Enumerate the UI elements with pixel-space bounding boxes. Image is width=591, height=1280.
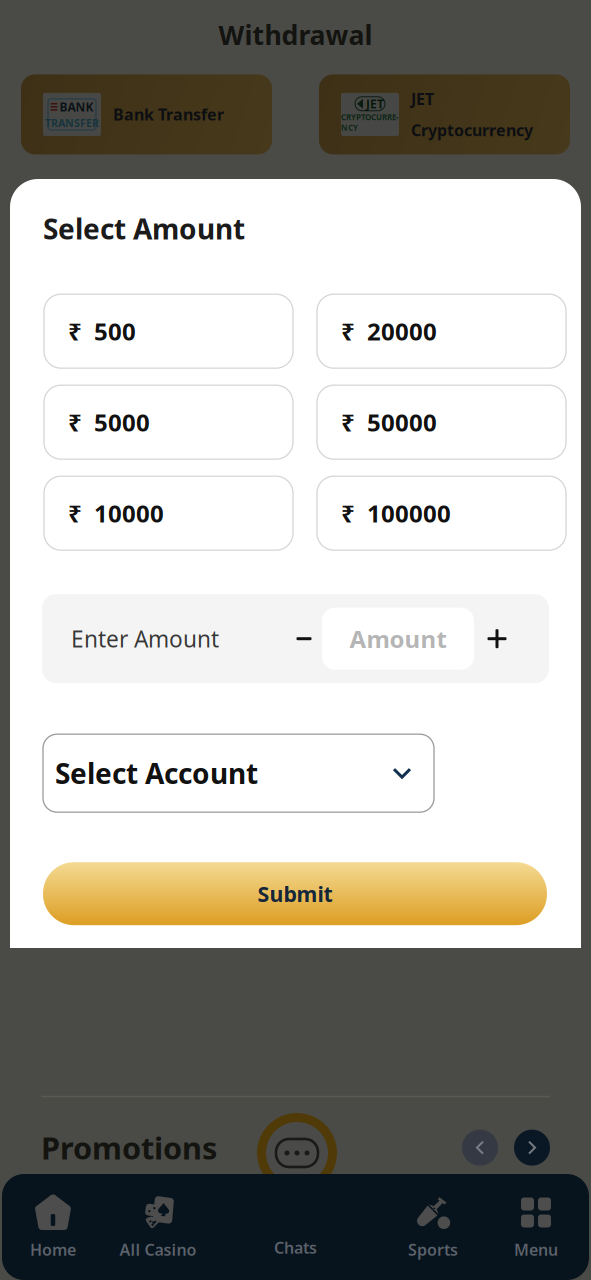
button[interactable]: ₹ 10000 [44, 476, 293, 550]
button[interactable]: Home [2, 1174, 104, 1280]
button[interactable]: Chats [257, 1113, 337, 1193]
button[interactable]: ₹ 20000 [317, 294, 566, 368]
button[interactable]: Previous [462, 1130, 498, 1166]
staticText: Bank Transfer [113, 104, 224, 125]
staticText: Home [30, 1239, 76, 1260]
staticText: ₹ 500 [68, 315, 136, 347]
staticText: Cryptocurrency [411, 119, 533, 141]
button[interactable]: Sports [381, 1174, 485, 1280]
button[interactable]: Submit [43, 862, 547, 925]
staticText: Select Account [55, 755, 258, 792]
staticText: Chats [274, 1237, 317, 1258]
staticText: Select Amount [43, 210, 245, 247]
button[interactable]: ₹ 100000 [317, 476, 566, 550]
staticText: CRYPTOCURRENCY [341, 112, 399, 133]
button[interactable]: Chats [0, 1237, 591, 1258]
button[interactable]: ₹ 500 [44, 294, 293, 368]
staticText: JET [411, 88, 434, 109]
staticText: Amount [349, 623, 446, 655]
staticText: TRANSFER [45, 116, 99, 130]
button[interactable]: ₹ 50000 [317, 385, 566, 459]
staticText: ₹ 50000 [341, 406, 437, 438]
staticText: ₹ 5000 [68, 406, 150, 438]
button[interactable]: Next [514, 1130, 550, 1166]
button[interactable]: Menu [485, 1174, 587, 1280]
button[interactable]: ₹ 5000 [44, 385, 293, 459]
staticText: Menu [514, 1239, 558, 1260]
staticText: BANK [59, 99, 93, 115]
staticText: ₹ 10000 [68, 497, 164, 529]
button[interactable]: Select Account [43, 734, 434, 812]
staticText: ₹ 100000 [341, 497, 451, 529]
staticText: Sports [408, 1239, 458, 1260]
button[interactable]: BANK [21, 74, 272, 154]
staticText: Withdrawal [218, 17, 372, 52]
button[interactable]: Amount [322, 608, 474, 670]
staticText: Submit [257, 879, 332, 908]
staticText: Enter Amount [71, 624, 219, 654]
button[interactable]: JET [319, 74, 570, 154]
staticText: JET [366, 96, 384, 112]
staticText: All Casino [119, 1239, 196, 1260]
staticText: ₹ 20000 [341, 315, 437, 347]
button[interactable]: All Casino [104, 1174, 212, 1280]
staticText: Promotions [41, 1127, 217, 1168]
